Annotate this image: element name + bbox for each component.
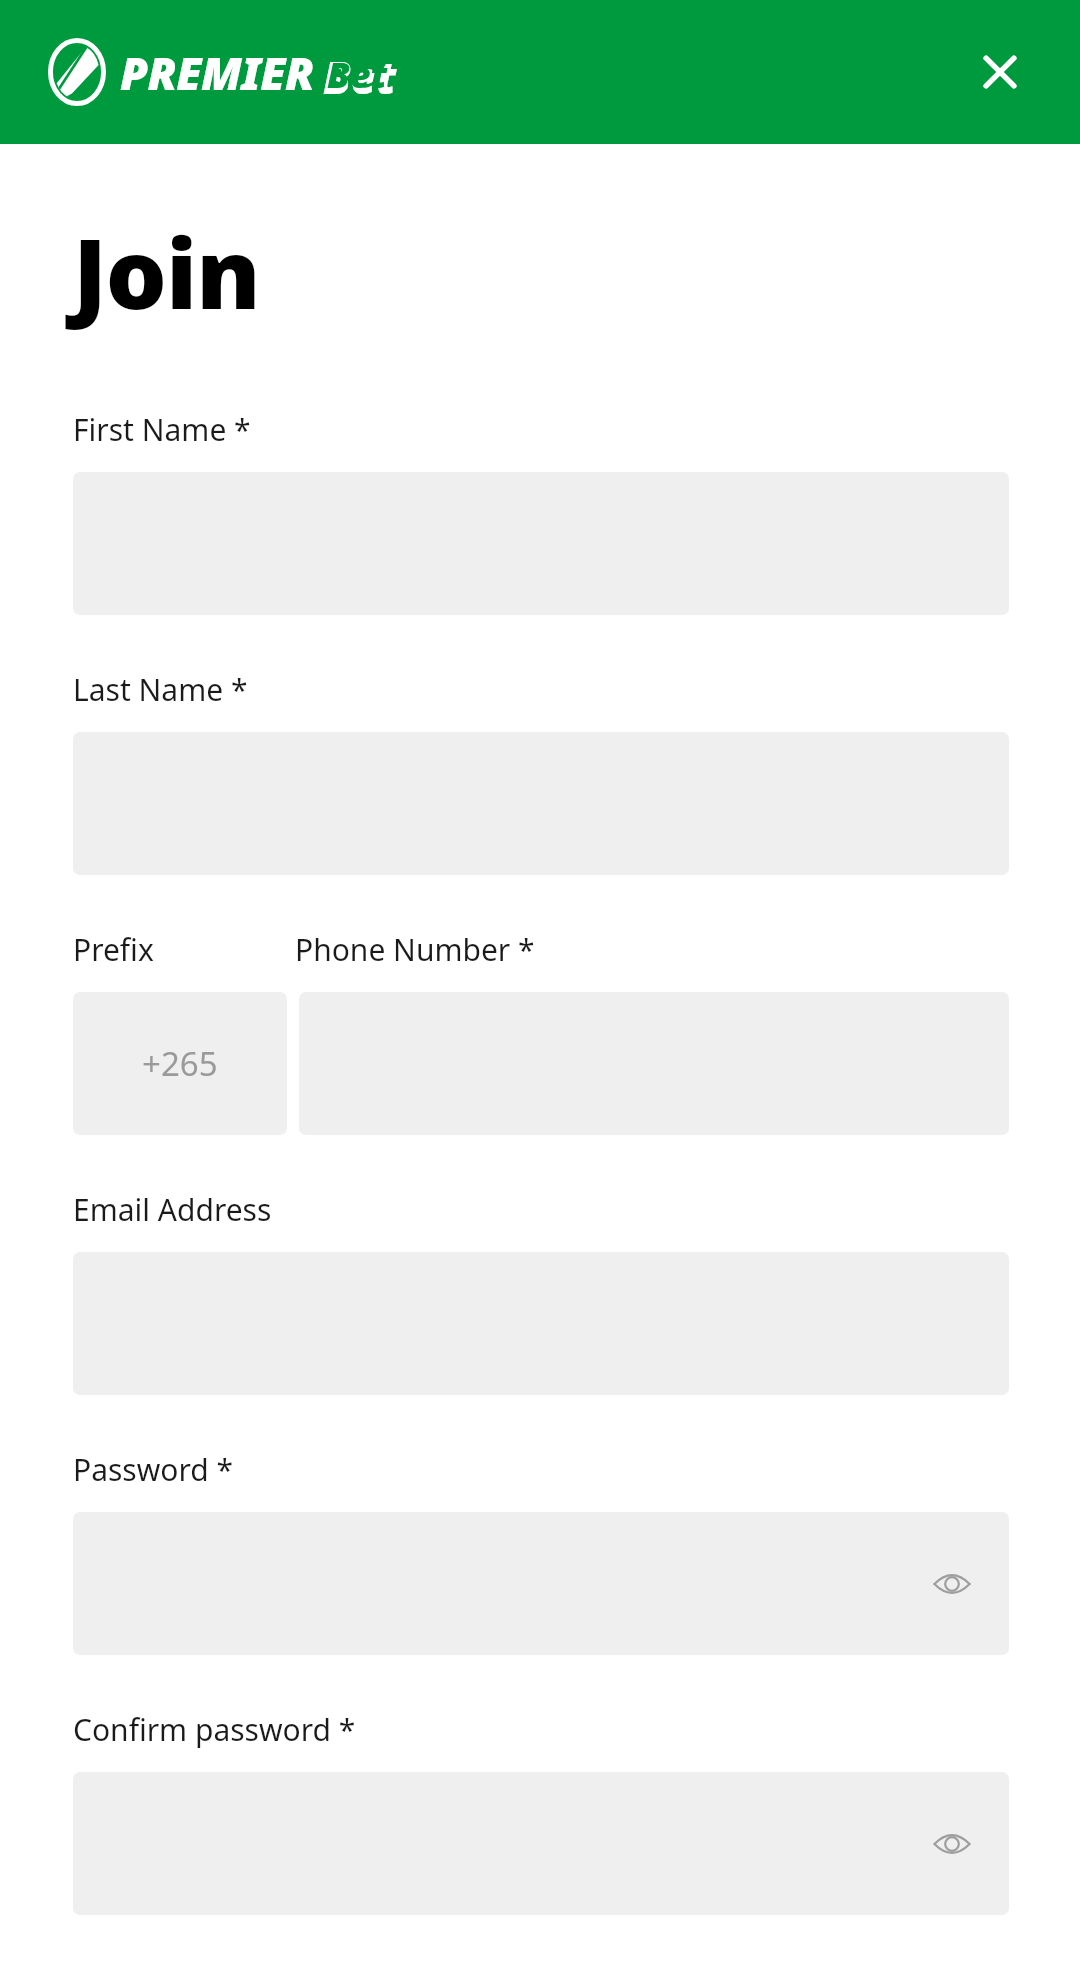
staticText: First Name * <box>73 409 251 450</box>
staticText: Last Name * <box>73 669 248 710</box>
staticText: Bet <box>327 50 388 97</box>
button[interactable]: Close <box>960 32 1040 112</box>
button[interactable]: Show Confirm password <box>932 1827 972 1861</box>
staticText: Confirm password * <box>73 1709 356 1750</box>
staticText: Bet <box>323 47 397 97</box>
button[interactable]: Show Password <box>932 1567 972 1601</box>
button[interactable]: Confirm password <box>73 1772 1009 1915</box>
button[interactable]: Prefix <box>73 992 287 1135</box>
staticText: Join <box>73 206 260 337</box>
button[interactable]: Password <box>73 1512 1009 1655</box>
staticText: Email Address <box>73 1189 272 1230</box>
staticText: +265 <box>142 1041 218 1086</box>
staticText: Phone Number * <box>295 929 535 970</box>
button[interactable]: Premier Bet <box>48 38 413 106</box>
staticText: Password * <box>73 1449 234 1490</box>
staticText: PREMIER <box>120 42 314 103</box>
staticText: Prefix <box>73 929 154 970</box>
